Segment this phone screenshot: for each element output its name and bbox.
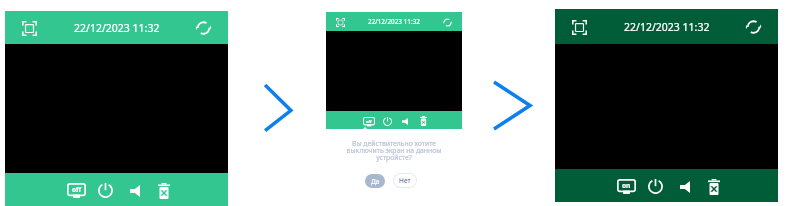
staticText: off xyxy=(72,185,82,194)
button[interactable]: Power xyxy=(91,174,120,206)
button[interactable]: Fullscreen xyxy=(335,17,345,27)
staticText: Да xyxy=(371,177,380,186)
staticText: on xyxy=(622,181,631,190)
button[interactable]: Volume xyxy=(396,112,414,130)
button[interactable]: Display off xyxy=(360,112,378,130)
button[interactable]: Нет xyxy=(394,174,416,187)
button[interactable]: Delete xyxy=(699,170,728,203)
staticText: off xyxy=(366,119,372,124)
staticText: Нет xyxy=(399,176,411,185)
button[interactable]: Refresh xyxy=(195,20,211,36)
button[interactable]: Power xyxy=(641,170,670,203)
button[interactable]: Volume xyxy=(670,170,699,203)
button[interactable]: Delete xyxy=(414,112,432,130)
staticText: 22/12/2023 11:32 xyxy=(74,21,160,35)
button[interactable]: Display on xyxy=(612,170,641,203)
button[interactable]: Volume xyxy=(120,174,149,206)
button[interactable]: Power xyxy=(378,112,396,130)
button[interactable]: Refresh xyxy=(442,17,452,27)
button[interactable]: Delete xyxy=(149,174,178,206)
button[interactable]: Да xyxy=(365,174,385,188)
button[interactable]: Fullscreen xyxy=(21,20,37,36)
staticText: 22/12/2023 11:32 xyxy=(368,17,420,26)
staticText: 22/12/2023 11:32 xyxy=(624,20,710,34)
button[interactable]: Refresh xyxy=(745,19,761,35)
button[interactable]: Display off xyxy=(62,174,91,206)
staticText: Вы действительно хотите выключить экран … xyxy=(326,139,462,162)
button[interactable]: Fullscreen xyxy=(571,19,587,35)
